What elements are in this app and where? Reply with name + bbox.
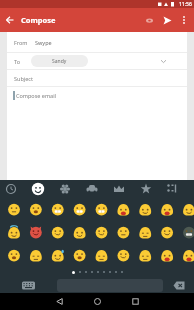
button[interactable]: From (7, 32, 187, 52)
button[interactable] (0, 244, 21, 267)
button[interactable] (138, 180, 166, 198)
button[interactable] (172, 221, 194, 244)
button[interactable] (150, 244, 172, 267)
button[interactable] (0, 221, 21, 244)
button[interactable]: Subject (7, 70, 187, 86)
button[interactable] (142, 13, 156, 27)
button[interactable] (84, 244, 106, 267)
button[interactable] (27, 180, 54, 198)
button[interactable] (110, 180, 138, 198)
button[interactable] (150, 198, 172, 221)
button[interactable] (179, 15, 189, 25)
button[interactable] (82, 293, 112, 310)
staticText: From (14, 39, 28, 46)
button[interactable] (4, 14, 16, 26)
staticText: 11:56 (179, 1, 192, 8)
staticText: Compose email (16, 92, 56, 99)
button[interactable] (106, 198, 128, 221)
button[interactable] (54, 180, 82, 198)
staticText: To (14, 58, 21, 65)
button[interactable] (166, 180, 194, 198)
button[interactable] (21, 198, 42, 221)
button[interactable] (160, 13, 174, 27)
staticText: Compose (21, 15, 56, 25)
button[interactable] (21, 244, 42, 267)
button[interactable] (172, 198, 194, 221)
button[interactable] (0, 198, 21, 221)
button[interactable] (120, 293, 150, 310)
staticText: Sandy (52, 58, 67, 65)
button[interactable] (44, 293, 74, 310)
button[interactable]: To (7, 53, 187, 69)
staticText: Swype (35, 39, 52, 46)
button[interactable] (0, 277, 57, 293)
button[interactable] (21, 221, 42, 244)
staticText: Subject (14, 75, 33, 82)
button[interactable] (172, 244, 194, 267)
button[interactable] (128, 244, 150, 267)
button[interactable] (163, 277, 194, 293)
button[interactable] (106, 221, 128, 244)
button[interactable] (106, 244, 128, 267)
button[interactable] (0, 180, 27, 198)
button[interactable] (84, 221, 106, 244)
button[interactable] (63, 198, 84, 221)
button[interactable] (63, 221, 84, 244)
button[interactable] (150, 221, 172, 244)
button[interactable]: Compose email (7, 87, 187, 103)
button[interactable] (42, 198, 63, 221)
button[interactable] (63, 244, 84, 267)
button[interactable] (82, 180, 110, 198)
button[interactable] (84, 198, 106, 221)
button[interactable] (42, 221, 63, 244)
button[interactable] (128, 198, 150, 221)
button[interactable] (128, 221, 150, 244)
button[interactable] (42, 244, 63, 267)
